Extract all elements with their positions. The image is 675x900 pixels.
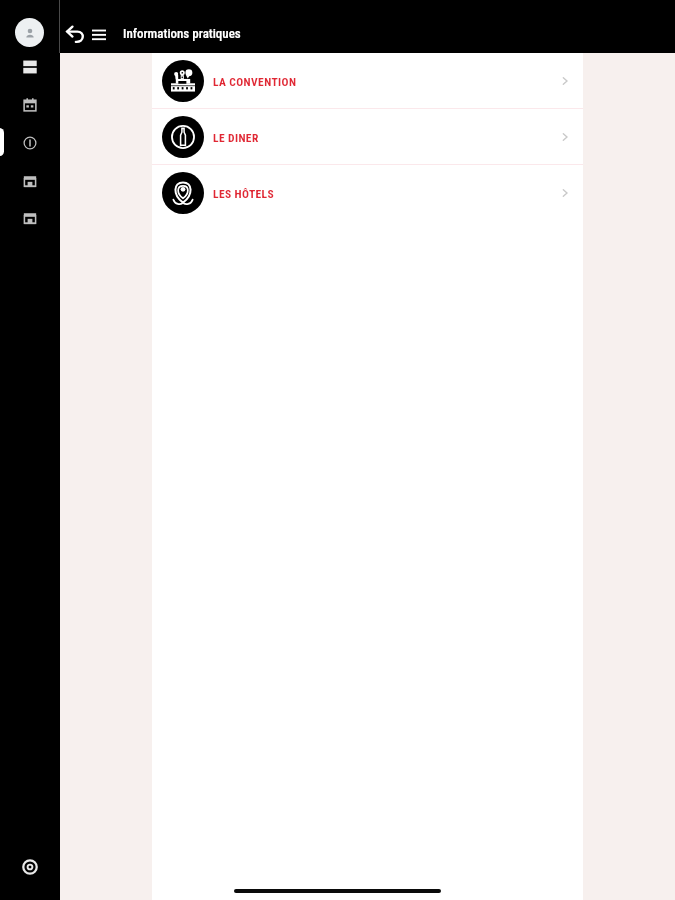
staticText: LES HÔTELS bbox=[213, 187, 275, 200]
staticText: LE DINER bbox=[213, 131, 259, 144]
button[interactable]: Profile bbox=[15, 18, 44, 47]
button[interactable]: LA CONVENTION bbox=[152, 53, 583, 109]
button[interactable]: LE DINER bbox=[152, 109, 583, 165]
button[interactable]: Agenda bbox=[19, 94, 41, 116]
button[interactable]: Settings bbox=[19, 856, 41, 878]
button[interactable]: Back bbox=[61, 19, 89, 47]
button[interactable]: Programme bbox=[19, 56, 41, 78]
button[interactable]: LES HÔTELS bbox=[152, 165, 583, 221]
button[interactable]: Menu bbox=[88, 24, 109, 45]
staticText: LA CONVENTION bbox=[213, 75, 297, 88]
button[interactable]: Informations bbox=[19, 132, 41, 154]
button[interactable]: Exposants bbox=[19, 207, 41, 229]
staticText: Informations pratiques bbox=[123, 26, 241, 41]
button[interactable]: Partenaires bbox=[19, 170, 41, 192]
